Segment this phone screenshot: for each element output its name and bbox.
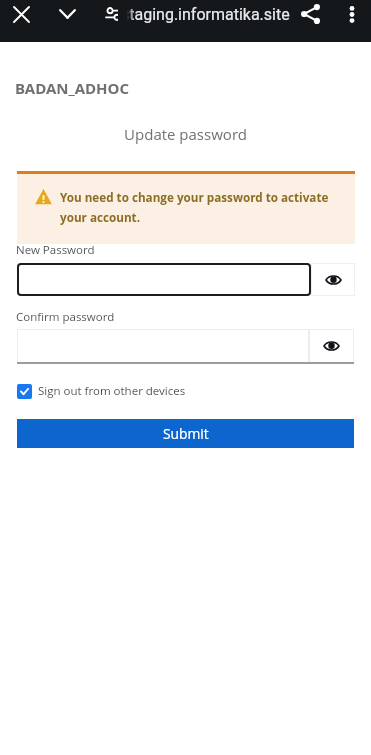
button[interactable]: Close bbox=[7, 0, 35, 28]
button[interactable]: Submit bbox=[17, 419, 354, 448]
button[interactable]: Show password bbox=[311, 263, 355, 296]
staticText: New Password bbox=[16, 242, 95, 258]
staticText: Confirm password bbox=[16, 309, 115, 325]
staticText: BADAN_ADHOC bbox=[15, 78, 130, 98]
button[interactable] bbox=[17, 329, 309, 363]
button[interactable]: Expand bbox=[53, 0, 81, 28]
button[interactable]: Share bbox=[296, 0, 324, 28]
staticText: staging.informatika.site bbox=[121, 5, 290, 24]
button[interactable]: More options bbox=[338, 0, 366, 28]
staticText: You need to change your password to acti… bbox=[60, 189, 343, 225]
staticText: Submit bbox=[163, 424, 209, 443]
button[interactable]: Show confirm password bbox=[309, 329, 354, 363]
button[interactable]: Sign out from other devices bbox=[17, 383, 186, 399]
button[interactable] bbox=[17, 263, 311, 296]
button[interactable]: Page settings bbox=[99, 0, 127, 28]
staticText: Update password bbox=[0, 124, 371, 144]
staticText: Sign out from other devices bbox=[38, 383, 186, 399]
